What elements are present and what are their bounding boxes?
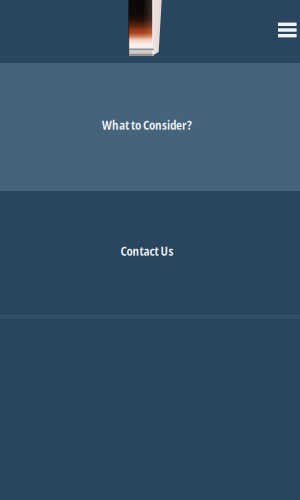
button[interactable]: Contact Us [0,191,300,315]
staticText: Contact Us [120,243,173,259]
staticText: What to Consider? [102,117,192,133]
button[interactable]: What to Consider? [0,63,300,191]
button[interactable]: Menu [270,15,300,45]
